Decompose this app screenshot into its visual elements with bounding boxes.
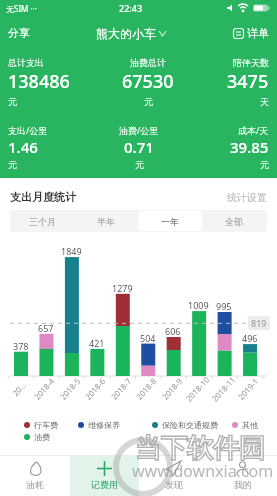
staticText: 1279 [112, 282, 133, 294]
staticText: 全部 [225, 216, 243, 227]
staticText: 421 [89, 337, 105, 349]
staticText: 2019-1 [235, 375, 261, 402]
staticText: 元 [260, 159, 269, 170]
button[interactable]: 全部 [202, 211, 266, 231]
staticText: 39.85 [230, 137, 269, 157]
staticText: 无SIM ··· [6, 3, 37, 14]
staticText: 67530 [122, 69, 174, 94]
staticText: 油费总计 [130, 57, 166, 68]
staticText: 记费用 [91, 479, 118, 490]
staticText: 油费/公里 [119, 124, 159, 136]
staticText: 496 [242, 332, 258, 344]
staticText: 行车费 [34, 420, 58, 430]
staticText: www.downxia.com [132, 460, 274, 482]
staticText: 一年 [161, 216, 179, 227]
staticText: 元 [144, 96, 153, 107]
staticText: 2018-11 [209, 373, 238, 404]
staticText: 22:43 [119, 2, 143, 14]
button[interactable]: 分享 [8, 26, 30, 40]
staticText: 我的 [234, 479, 252, 490]
staticText: 504 [140, 332, 156, 344]
staticText: 半年 [97, 216, 115, 227]
staticText: 0.71 [124, 137, 154, 157]
staticText: 2018-6 [82, 375, 108, 402]
staticText: 1849 [61, 245, 82, 257]
button[interactable]: 发现 [139, 456, 208, 496]
staticText: 138486 [8, 69, 70, 94]
button[interactable]: 详单 [233, 26, 269, 40]
staticText: 2018-7 [108, 375, 134, 402]
button[interactable]: 半年 [74, 211, 138, 231]
staticText: 油费 [34, 432, 50, 442]
staticText: 总计支出 [8, 57, 44, 68]
button[interactable]: 记费用 [70, 456, 139, 496]
staticText: 成本/天 [238, 124, 269, 136]
staticText: 2018-4 [31, 375, 57, 402]
staticText: 995 [216, 300, 232, 312]
staticText: 当下软件园 [135, 432, 265, 465]
staticText: 2018-8 [133, 375, 159, 402]
staticText: 657 [38, 322, 54, 334]
staticText: 支出/公里 [8, 124, 48, 136]
staticText: 1.46 [8, 137, 38, 157]
button[interactable]: 我的 [208, 456, 277, 496]
staticText: 分享 [8, 26, 30, 40]
button[interactable]: 油耗 [0, 456, 70, 496]
staticText: 3475 [227, 69, 269, 94]
staticText: 保险和交通规费 [162, 420, 218, 430]
staticText: 606 [165, 325, 181, 337]
staticText: 1009 [188, 299, 209, 311]
staticText: 元 [8, 159, 17, 170]
staticText: 统计设置 [227, 191, 267, 204]
staticText: 2018-5 [57, 375, 83, 402]
staticText: 陪伴天数 [233, 57, 269, 68]
button[interactable]: 一年 [138, 211, 202, 231]
staticText: 元 [8, 96, 17, 107]
staticText: 2018-10 [183, 373, 212, 404]
staticText: 元 [135, 159, 144, 170]
staticText: 三个月 [29, 216, 56, 227]
staticText: 其他 [242, 420, 258, 430]
staticText: 819 [251, 317, 267, 329]
button[interactable]: 熊大的小车 [96, 26, 166, 41]
staticText: 发现 [165, 479, 183, 490]
button[interactable]: 统计设置 [227, 191, 267, 204]
staticText: 熊大的小车 [96, 26, 156, 41]
staticText: 详单 [247, 26, 269, 40]
button[interactable]: 三个月 [11, 211, 74, 231]
staticText: 维修保养 [88, 420, 120, 430]
staticText: 天 [260, 96, 269, 107]
staticText: 油耗 [26, 479, 44, 490]
staticText: 支出月度统计 [10, 190, 76, 204]
staticText: 378 [13, 340, 29, 352]
staticText: 20... [10, 379, 28, 398]
staticText: 2018-9 [159, 375, 185, 402]
